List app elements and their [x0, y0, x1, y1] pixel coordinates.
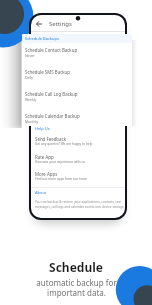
- staticText: automatic backup for important data.: [36, 277, 117, 298]
- staticText: Schedule Call Log Backup: [25, 91, 78, 97]
- staticText: You can backup & restore your applicatio…: [35, 200, 125, 209]
- button[interactable]: Schedule SMS Backup: [22, 69, 132, 90]
- staticText: Help Us: [35, 126, 50, 131]
- staticText: Settings: [49, 20, 72, 28]
- staticText: How was your experience with us: [35, 160, 85, 164]
- staticText: Find out more apps from our team: [35, 177, 87, 181]
- staticText: More Apps: [35, 171, 58, 177]
- staticText: Never: [25, 53, 35, 58]
- button[interactable]: Schedule Calendar Backup: [22, 113, 132, 126]
- button[interactable]: Schedule Call Log Backup: [22, 91, 132, 112]
- staticText: Daily: [25, 75, 33, 80]
- staticText: Schedule Backups: [25, 36, 59, 41]
- button[interactable]: More Apps: [31, 171, 125, 181]
- staticText: Rate App: [35, 154, 54, 160]
- button[interactable]: Rate App: [31, 154, 125, 164]
- staticText: Monthly: [25, 119, 39, 124]
- button[interactable]: Send Feedback: [31, 136, 125, 146]
- button[interactable]: Schedule Contact Backup: [22, 47, 132, 68]
- button[interactable]: Back: [31, 17, 125, 30]
- staticText: Get any queries? We are happy to help: [35, 142, 93, 146]
- button[interactable]: Schedule Backups: [22, 34, 132, 43]
- staticText: Schedule SMS Backup: [25, 69, 71, 75]
- staticText: About: [35, 190, 47, 195]
- other: Back: [35, 20, 43, 28]
- staticText: Send Feedback: [35, 136, 66, 142]
- staticText: Schedule Calendar Backup: [25, 113, 80, 119]
- staticText: Weekly: [25, 97, 37, 102]
- staticText: Schedule Contact Backup: [25, 47, 78, 53]
- staticText: Schedule: [49, 259, 103, 275]
